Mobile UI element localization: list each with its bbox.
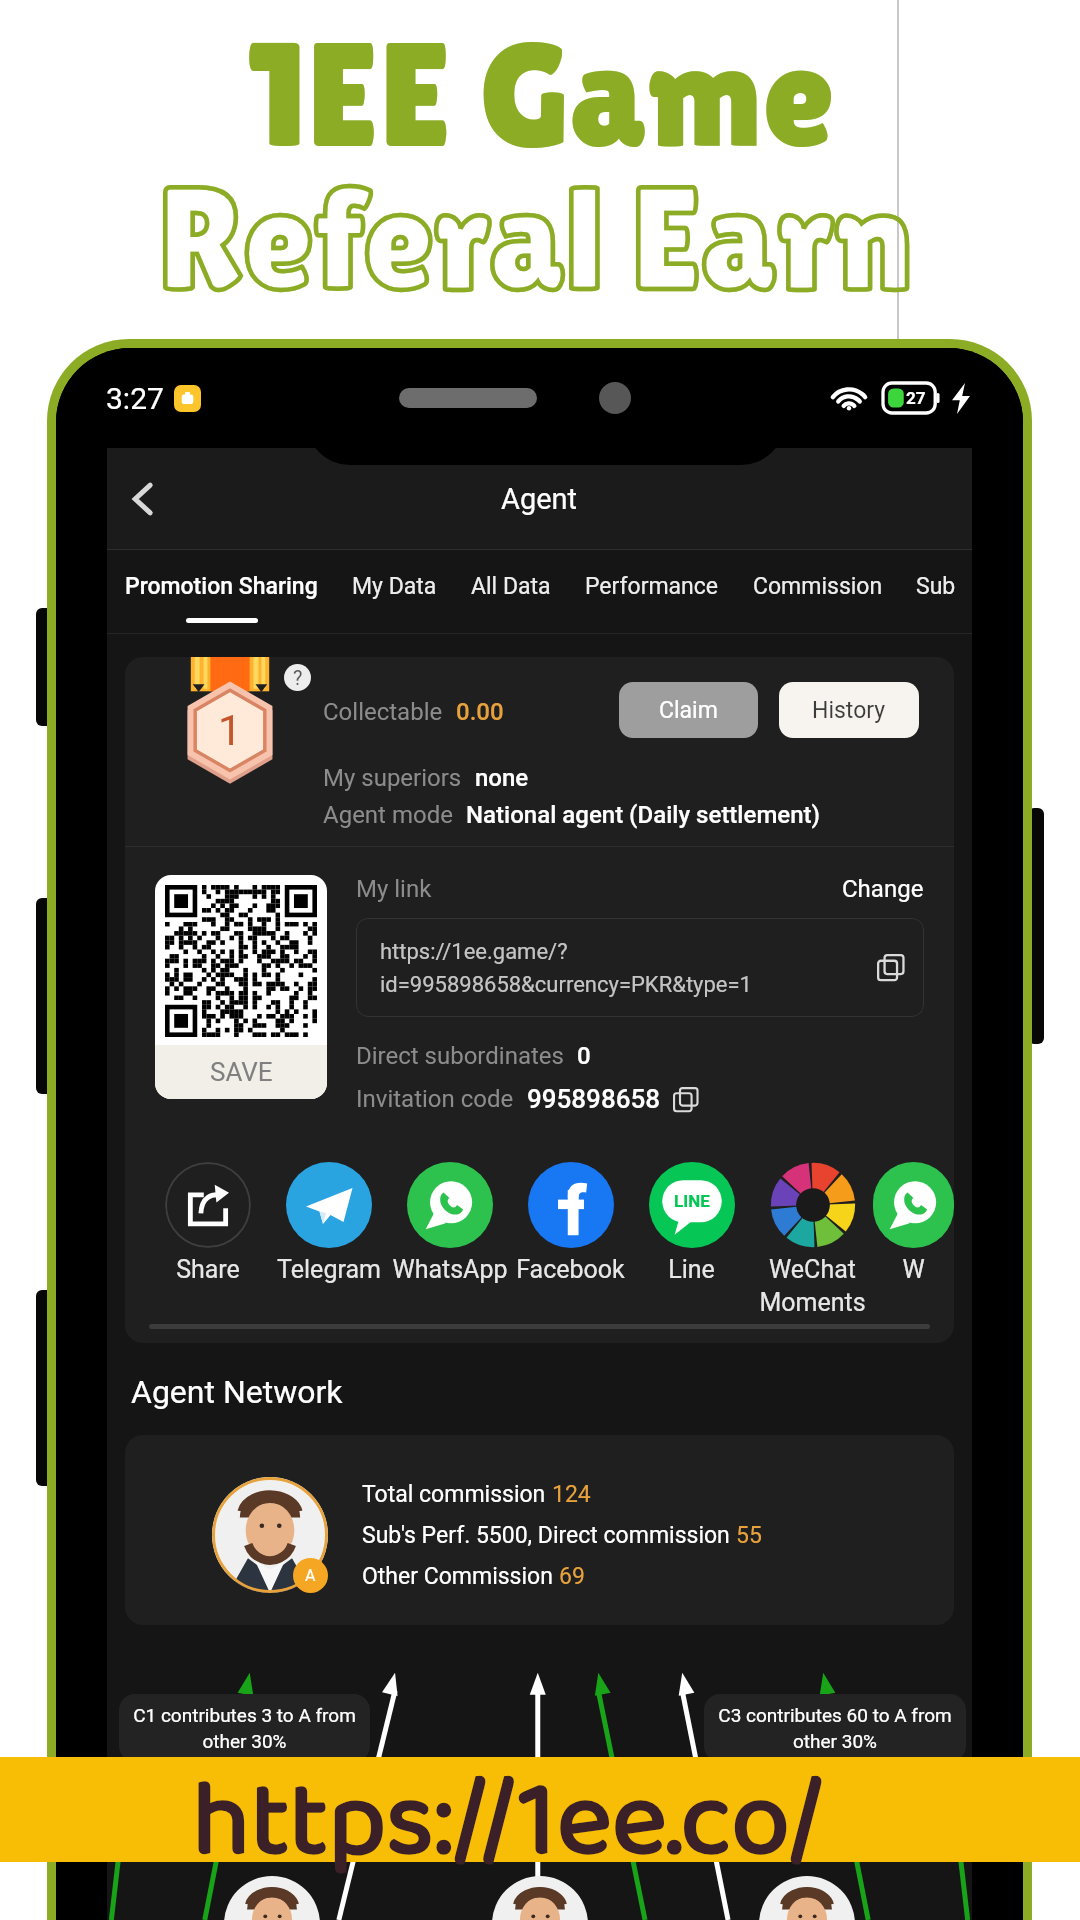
staticText: 69 — [559, 1563, 585, 1590]
staticText: Agent — [501, 482, 578, 516]
staticText: WeChat Moments — [759, 1255, 866, 1317]
staticText: Commission — [753, 573, 883, 600]
button[interactable]: Commission — [753, 550, 883, 633]
button[interactable]: Back — [113, 469, 173, 529]
button[interactable]: SAVE — [155, 875, 327, 1099]
staticText: none — [475, 764, 529, 792]
button[interactable]: Copy invitation code — [673, 1087, 698, 1112]
staticText: History — [812, 697, 886, 724]
staticText: Collectable — [323, 698, 443, 726]
staticText: 27 — [906, 388, 926, 408]
button[interactable]: All Data — [471, 550, 551, 633]
button[interactable] — [0, 1757, 1080, 1862]
staticText: Performance — [585, 573, 719, 600]
button[interactable]: WeChat Moments — [752, 1162, 873, 1317]
button[interactable]: Facebook — [510, 1162, 631, 1284]
staticText: Sub's Perf. 5500, Direct commission — [362, 1522, 736, 1549]
staticText: 0.00 — [456, 698, 504, 726]
staticText: LINE — [674, 1191, 710, 1211]
staticText: Total commission — [362, 1481, 552, 1508]
button[interactable]: A — [125, 1435, 954, 1625]
staticText: Change — [842, 875, 924, 903]
button[interactable]: WhatsApp — [389, 1162, 510, 1284]
button[interactable]: Share — [147, 1162, 268, 1284]
button[interactable]: Sub — [916, 550, 956, 633]
staticText: My superiors — [323, 764, 462, 792]
staticText: Claim — [659, 697, 718, 724]
button[interactable]: Claim — [619, 682, 758, 738]
staticText: 124 — [552, 1481, 591, 1508]
staticText: Referal Earn — [158, 156, 913, 321]
button[interactable]: W — [873, 1162, 954, 1284]
staticText: WhatsApp — [392, 1255, 508, 1284]
staticText: 55 — [736, 1522, 762, 1549]
staticText: Direct subordinates — [356, 1042, 564, 1070]
staticText: Sub — [916, 573, 956, 600]
staticText: 1 — [218, 706, 242, 755]
staticText: Promotion Sharing — [125, 573, 318, 600]
staticText: My Data — [352, 573, 437, 600]
staticText: Facebook — [516, 1255, 625, 1284]
staticText: Line — [668, 1255, 715, 1284]
staticText: https://1ee.game/? id=995898658&currency… — [380, 939, 752, 997]
staticText: National agent (Daily settlement) — [466, 801, 820, 829]
staticText: 0 — [577, 1042, 591, 1070]
button[interactable]: Help — [284, 664, 311, 691]
button[interactable]: Performance — [585, 550, 719, 633]
staticText: All Data — [471, 573, 551, 600]
staticText: Agent Network — [131, 1373, 343, 1411]
button[interactable]: Telegram — [268, 1162, 389, 1284]
staticText: Share — [176, 1255, 240, 1284]
staticText: A — [305, 1566, 316, 1585]
button[interactable]: LINE — [631, 1162, 752, 1284]
staticText: Agent mode — [323, 801, 453, 829]
staticText: Telegram — [277, 1255, 381, 1284]
staticText: 1EE Game — [247, 10, 834, 178]
staticText: C3 contributes 60 to A from other 30% — [718, 1704, 952, 1752]
staticText: C1 contributes 3 to A from other 30% — [133, 1704, 356, 1752]
staticText: https://1ee.co/ — [192, 1738, 823, 1919]
button[interactable]: Promotion Sharing — [125, 550, 318, 633]
staticText: ? — [293, 666, 303, 689]
button[interactable]: History — [779, 682, 919, 738]
staticText: Other Commission — [362, 1563, 559, 1590]
staticText: SAVE — [210, 1057, 273, 1087]
button[interactable]: Copy link — [877, 954, 904, 981]
staticText: Invitation code — [356, 1085, 514, 1113]
button[interactable]: My Data — [352, 550, 437, 633]
staticText: My link — [356, 875, 432, 903]
button[interactable]: Change — [842, 875, 924, 903]
staticText: 3:27 — [106, 381, 164, 416]
staticText: 995898658 — [527, 1084, 660, 1114]
staticText: W — [902, 1255, 925, 1284]
